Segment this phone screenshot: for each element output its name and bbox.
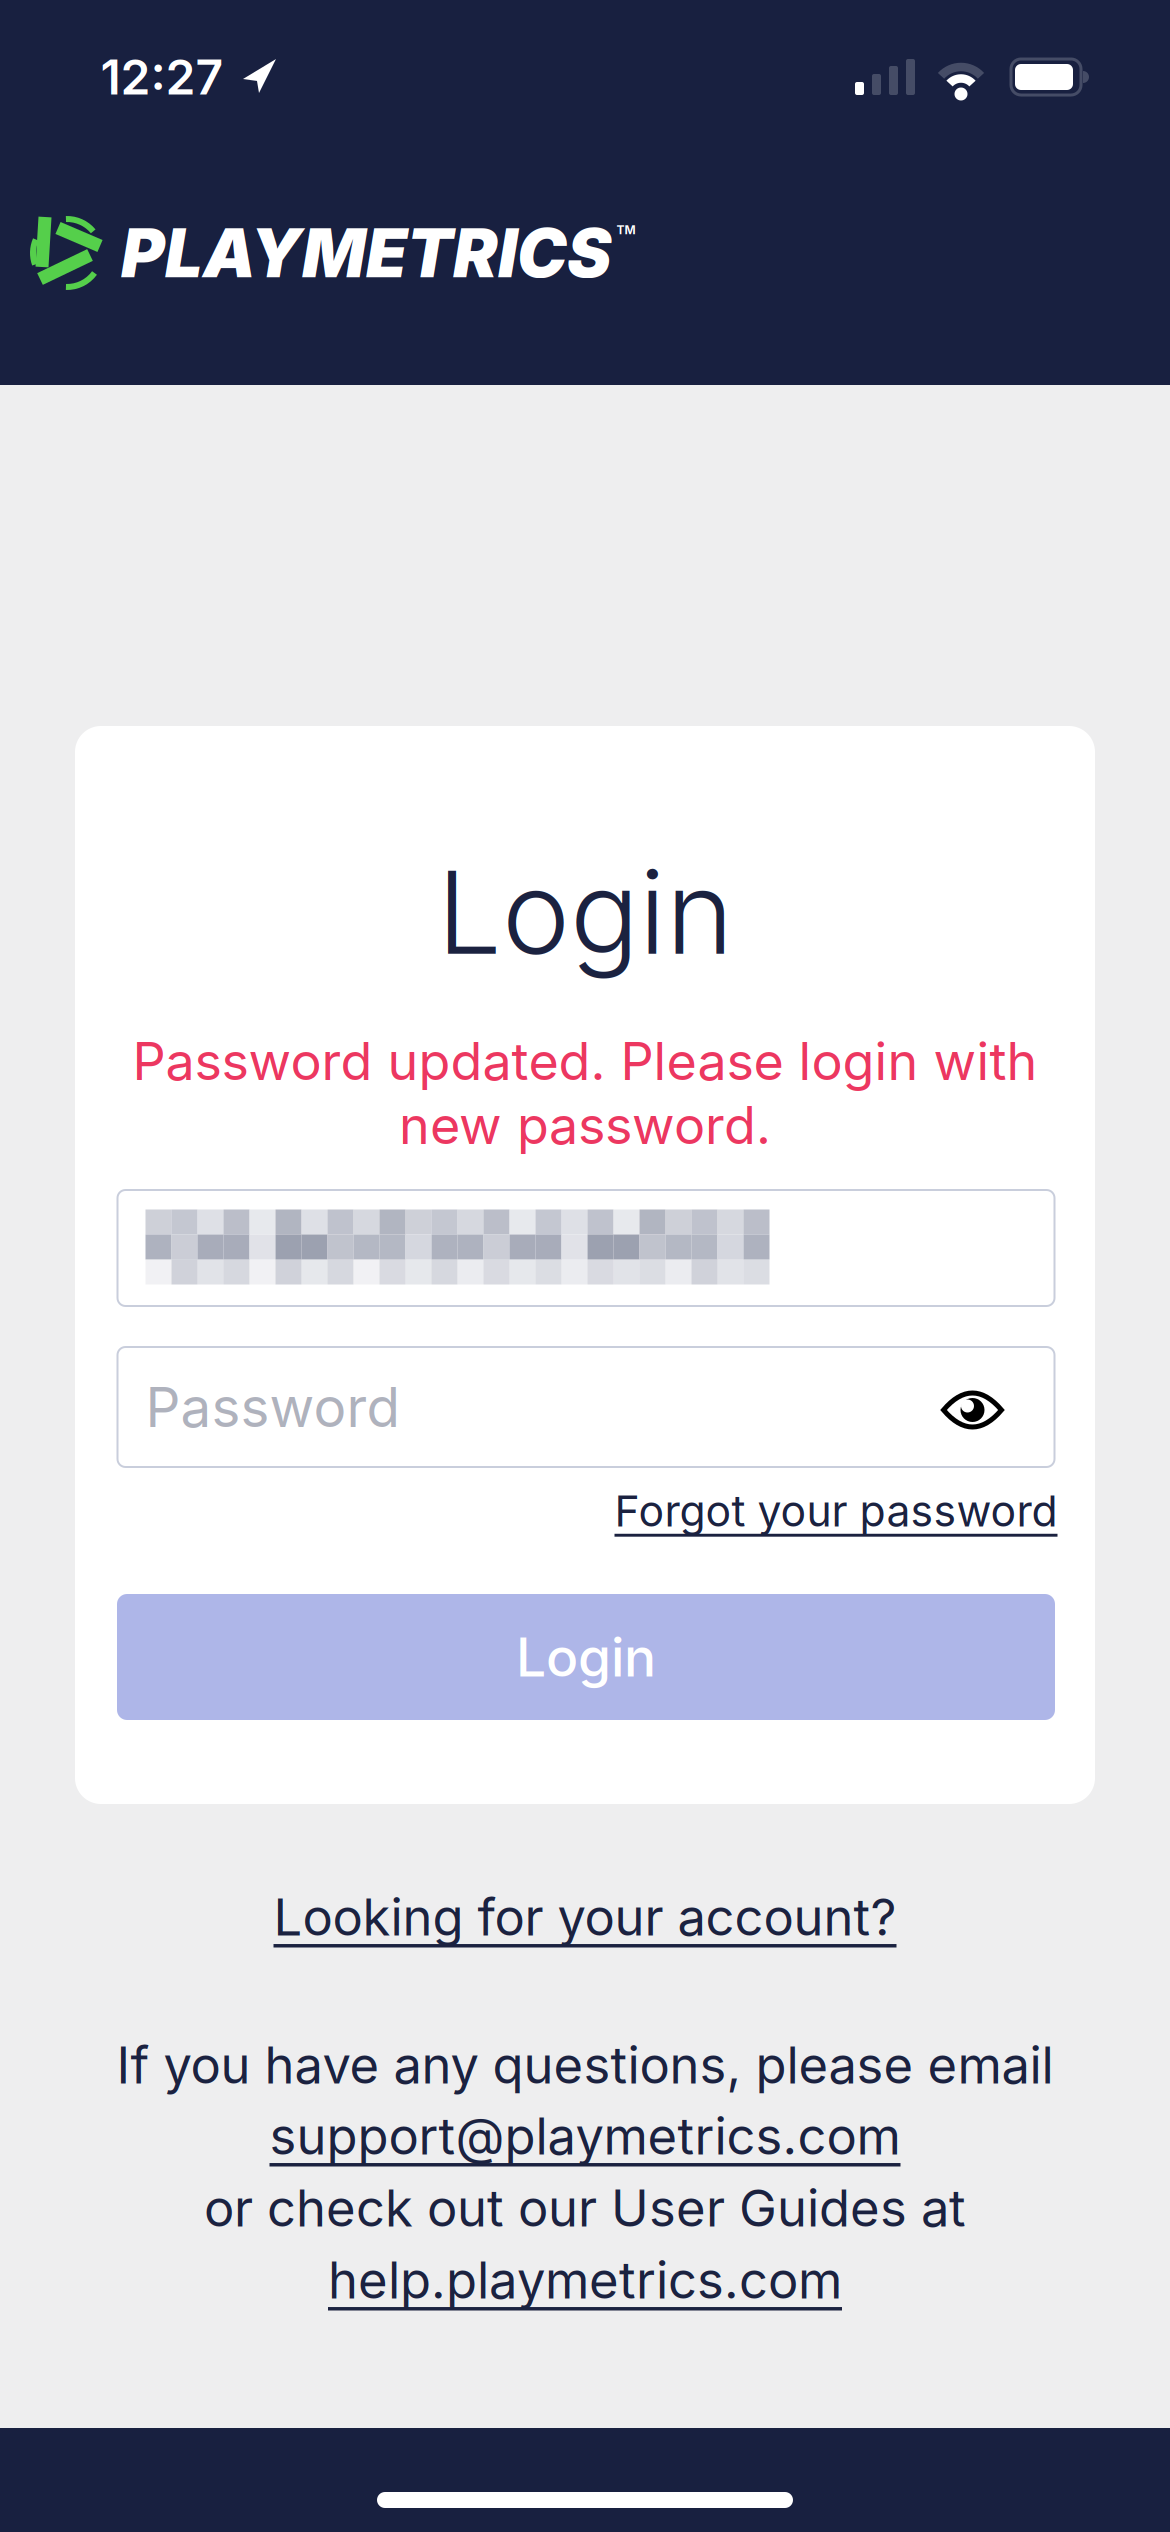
button[interactable]: Forgot your password: [614, 1486, 1057, 1536]
staticText: Login: [437, 844, 733, 980]
staticText: Login: [516, 1625, 656, 1688]
staticText: Looking for your account?: [273, 1887, 896, 1947]
button[interactable]: Email: [117, 1190, 1054, 1306]
button[interactable]: Login: [117, 1594, 1055, 1720]
button[interactable]: Looking for your account?: [273, 1887, 896, 1947]
staticText: Password updated. Please login with: [132, 1030, 1037, 1092]
staticText: 12:27: [100, 49, 223, 105]
button[interactable]: support@playmetrics.com: [269, 2106, 900, 2166]
staticText: Forgot your password: [614, 1486, 1057, 1536]
staticText: Password: [145, 1375, 399, 1439]
staticText: support@playmetrics.com: [269, 2106, 900, 2166]
staticText: or check out our User Guides at: [204, 2178, 966, 2238]
staticText: If you have any questions, please email: [116, 2035, 1053, 2095]
staticText: PLAYMETRICS: [121, 214, 611, 292]
staticText: TM: [616, 223, 635, 237]
button[interactable]: Password: [117, 1347, 1054, 1467]
staticText: help.playmetrics.com: [328, 2250, 842, 2310]
staticText: new password.: [399, 1094, 771, 1156]
button[interactable]: help.playmetrics.com: [328, 2250, 842, 2310]
